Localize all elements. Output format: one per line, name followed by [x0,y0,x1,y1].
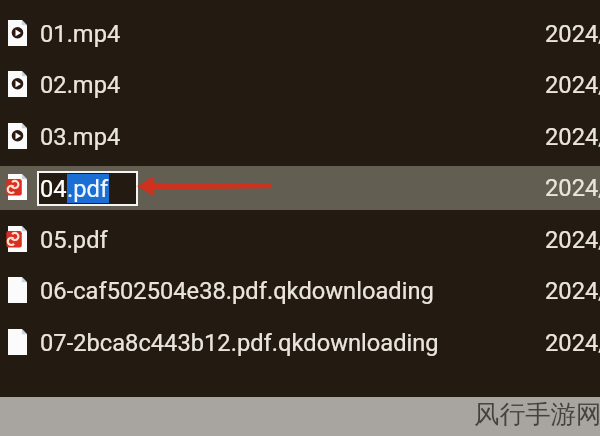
button[interactable]: Video file [0,63,600,107]
button[interactable]: Video file [0,12,600,56]
staticText: 01.mp4 [40,20,121,48]
staticText: 04 [40,175,67,203]
staticText: 02.mp4 [40,71,121,99]
button[interactable]: File [0,321,600,365]
other: Annotation arrow pointing at the rename … [0,0,600,436]
button[interactable]: File [0,269,600,313]
staticText: 2024/ [545,174,600,202]
button[interactable]: PDF file [0,166,600,210]
other: Video file [8,20,27,46]
other: PDF file [8,174,27,200]
staticText: 2024/ [545,123,600,151]
staticText: 风行手游网 [474,398,600,430]
staticText: 2024/ [545,71,600,99]
staticText: 2024/ [545,277,600,305]
staticText: 07-2bca8c443b12.pdf.qkdownloading [40,329,439,357]
button[interactable]: 04 [37,171,138,206]
staticText: 06-caf502504e38.pdf.qkdownloading [40,277,434,305]
other: Video file [8,71,27,97]
staticText: 03.mp4 [40,123,121,151]
staticText: .pdf [67,175,109,203]
other: File [8,277,27,303]
other: File [8,329,27,355]
staticText: 2024/ [545,20,600,48]
other: PDF file [8,226,27,252]
staticText: 2024/ [545,329,600,357]
staticText: 05.pdf [40,226,108,254]
staticText: 2024/ [545,226,600,254]
other: Video file [8,123,27,149]
button[interactable]: Video file [0,115,600,159]
button[interactable]: 风行手游网 [0,397,600,436]
button[interactable]: PDF file [0,218,600,262]
